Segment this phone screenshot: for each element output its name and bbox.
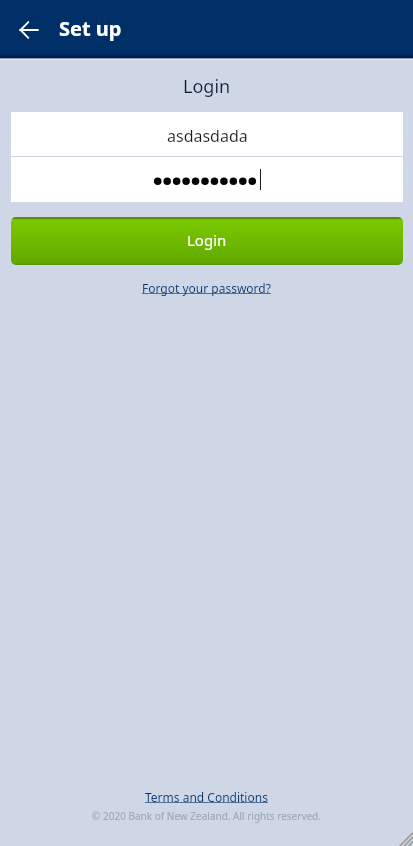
button[interactable]: Login bbox=[11, 217, 403, 265]
button[interactable]: Terms and Conditions bbox=[141, 787, 272, 807]
staticText: asdasdada bbox=[167, 125, 248, 147]
staticText: Set up bbox=[59, 15, 122, 42]
staticText: Terms and Conditions bbox=[145, 789, 268, 805]
staticText: Login bbox=[187, 230, 227, 250]
staticText: Login bbox=[183, 74, 231, 99]
button[interactable]: Forgot your password? bbox=[138, 277, 275, 299]
button[interactable]: Username field bbox=[11, 112, 403, 156]
button[interactable]: Back bbox=[10, 11, 46, 47]
button[interactable]: Password field bbox=[11, 157, 403, 202]
staticText: Forgot your password? bbox=[142, 280, 271, 296]
staticText: © 2020 Bank of New Zealand. All rights r… bbox=[92, 809, 321, 823]
